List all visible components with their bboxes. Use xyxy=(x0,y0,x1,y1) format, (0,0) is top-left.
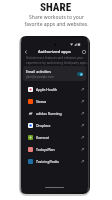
staticText: Unlock more features and enhance your ex… xyxy=(26,56,88,64)
button[interactable]: TodaysPlan xyxy=(21,143,88,155)
staticText: Strava xyxy=(36,99,81,104)
staticText: john@example.com xyxy=(26,75,54,79)
button[interactable]: adidas Running xyxy=(21,107,88,119)
staticText: TodaysPlan xyxy=(36,147,81,152)
button[interactable]: TrainingPeaks xyxy=(21,155,88,167)
button[interactable]: Help xyxy=(79,47,88,56)
staticText: SHARE xyxy=(40,1,72,14)
button[interactable]: Komoot xyxy=(21,131,88,143)
staticText: Apple Health xyxy=(36,87,81,92)
button[interactable]: Email activities xyxy=(23,66,86,81)
button[interactable]: Back xyxy=(21,47,30,56)
button[interactable]: Apple Health xyxy=(21,83,88,95)
staticText: Dropbox xyxy=(36,123,81,128)
staticText: adidas Running xyxy=(36,111,81,116)
staticText: TrainingPeaks xyxy=(36,159,81,164)
staticText: Authorized apps xyxy=(38,49,71,55)
staticText: Komoot xyxy=(36,135,81,140)
button[interactable]: Dropbox xyxy=(21,119,88,131)
button[interactable]: Strava xyxy=(21,95,88,107)
staticText: Email activities xyxy=(26,69,51,74)
staticText: Share workouts to your favorite apps and… xyxy=(24,14,89,28)
